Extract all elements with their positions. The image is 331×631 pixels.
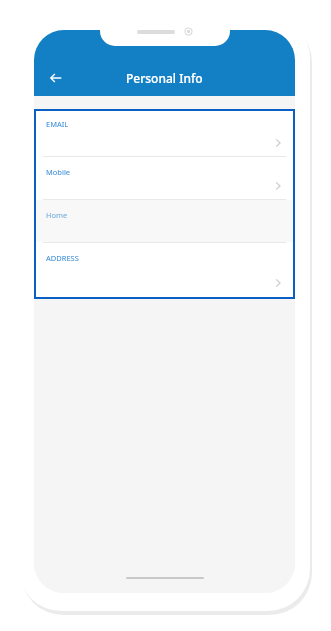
staticText: ADDRESS bbox=[46, 253, 79, 263]
staticText: EMAIL bbox=[46, 119, 69, 129]
staticText: Home bbox=[46, 210, 68, 220]
button[interactable]: Home bbox=[34, 200, 295, 242]
button[interactable]: EMAIL bbox=[34, 109, 295, 156]
button[interactable]: Back bbox=[42, 64, 70, 92]
staticText: Mobile bbox=[46, 167, 71, 177]
button[interactable]: Mobile bbox=[34, 157, 295, 199]
button[interactable]: ADDRESS bbox=[34, 243, 295, 296]
staticText: Personal Info bbox=[126, 70, 203, 86]
